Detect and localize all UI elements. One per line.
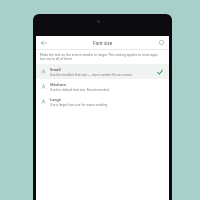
button[interactable]: Medium	[36, 79, 169, 94]
staticText: Small	[50, 67, 61, 72]
button[interactable]: Navigate up	[38, 37, 49, 48]
button[interactable]: More options	[156, 37, 167, 48]
staticText: Use the smallest font size — more conten…	[50, 73, 133, 77]
staticText: Use the default font size. Recommended.	[50, 88, 110, 92]
button[interactable]: Font size	[93, 40, 113, 46]
staticText: Font size	[93, 40, 113, 46]
staticText: Use a larger font size for easier readin…	[50, 103, 109, 107]
staticText: Make the text on the screen smaller or l…	[40, 53, 163, 61]
button[interactable]: Small	[36, 64, 169, 79]
button[interactable]: Large	[36, 94, 169, 109]
staticText: Medium	[50, 82, 67, 87]
staticText: Large	[50, 97, 62, 102]
